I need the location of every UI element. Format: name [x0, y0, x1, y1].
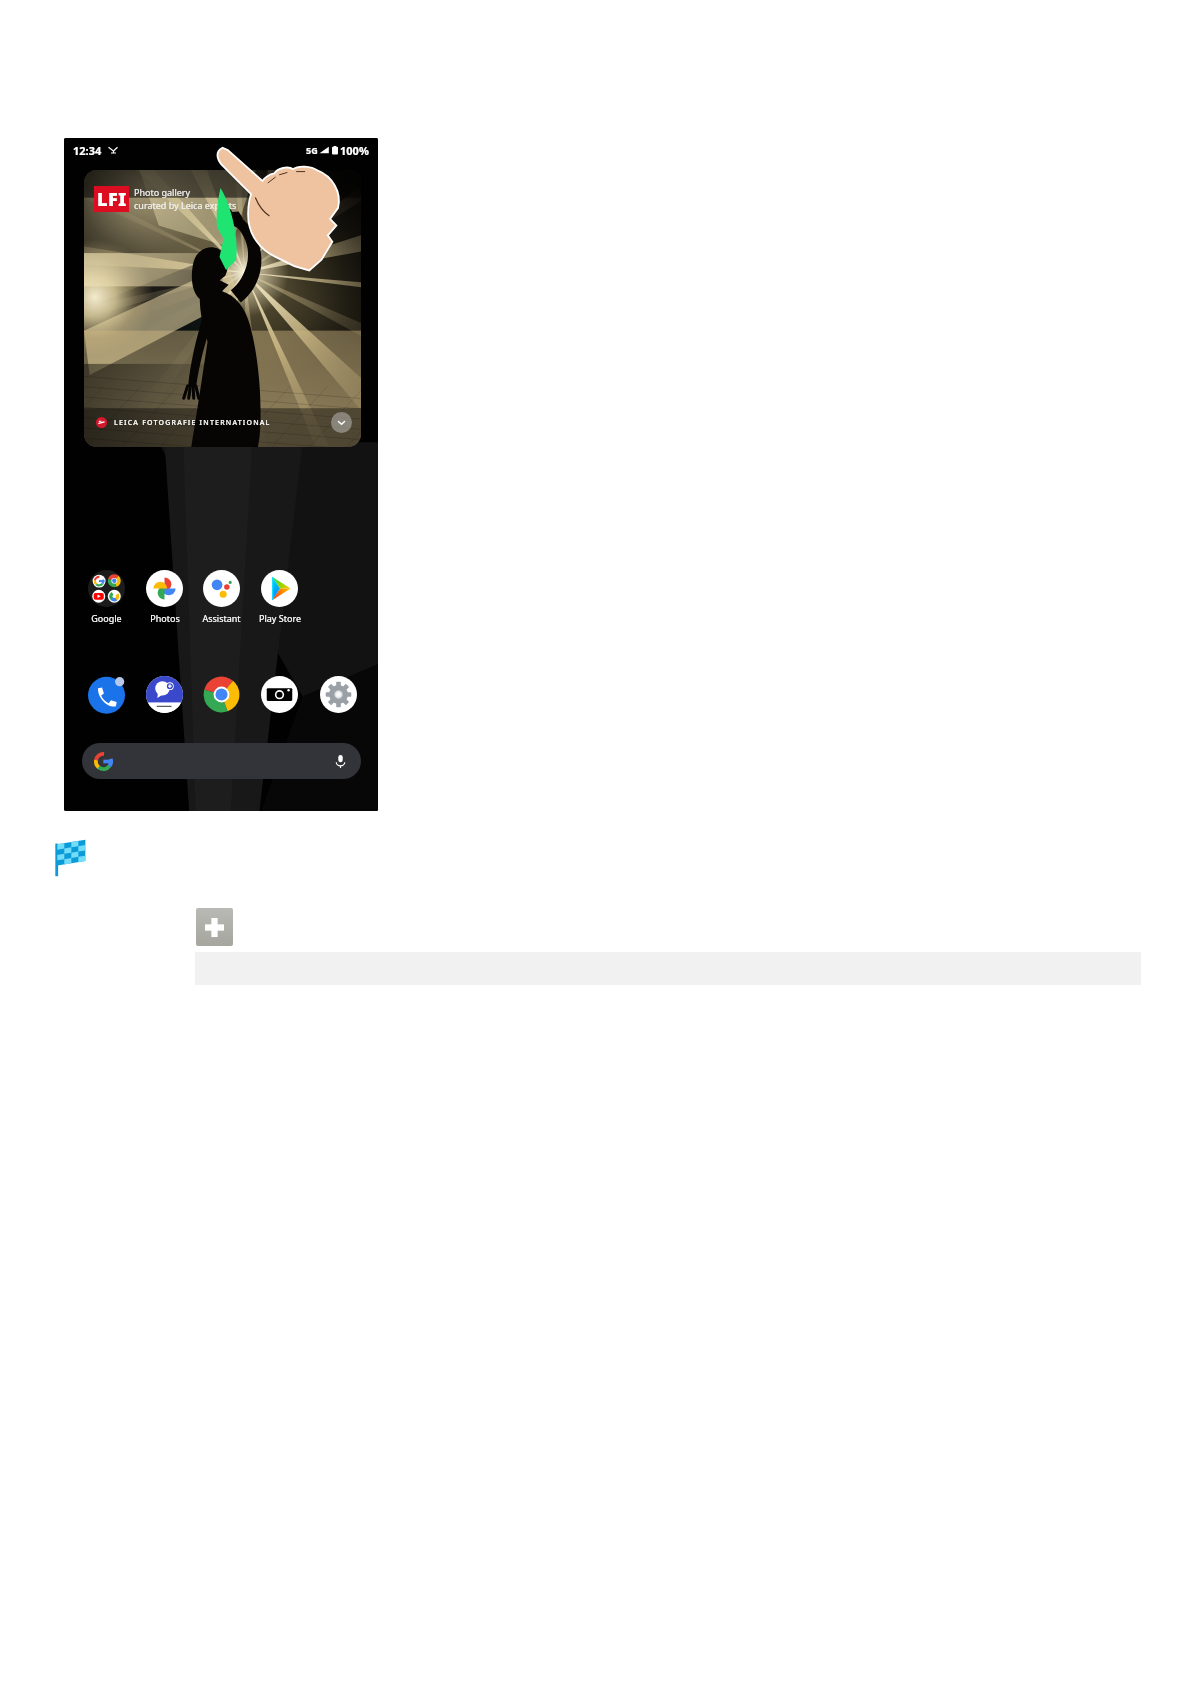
staticText: LFI — [97, 187, 127, 212]
button[interactable]: Photos — [136, 570, 193, 624]
button[interactable]: Assistant — [193, 570, 250, 624]
staticText: 100% — [340, 143, 369, 158]
button[interactable]: Add — [196, 908, 233, 946]
staticText: LEICA FOTOGRAFIE INTERNATIONAL — [114, 418, 271, 428]
button[interactable]: Google — [78, 570, 135, 624]
button[interactable]: Phone — [88, 676, 125, 713]
button[interactable]: Expand notification — [331, 412, 352, 433]
staticText: 12:34 — [73, 143, 102, 158]
button[interactable]: Camera — [261, 676, 298, 713]
button[interactable]: Settings — [320, 676, 357, 713]
staticText: curated by Leica experts — [134, 199, 237, 211]
staticText: Photo gallery — [134, 186, 191, 198]
staticText: 5G — [306, 144, 318, 156]
staticText: Play Store — [259, 612, 301, 624]
staticText: Assistant — [202, 612, 241, 624]
button[interactable]: Play Store — [251, 570, 308, 624]
button[interactable]: Voice search — [332, 753, 349, 770]
button[interactable]: Chrome — [203, 676, 240, 713]
button[interactable]: LFI — [84, 170, 361, 447]
button[interactable]: Messages — [146, 676, 183, 713]
button[interactable]: Search with Google — [82, 743, 361, 779]
staticText: Photos — [150, 612, 180, 624]
staticText: Google — [91, 612, 122, 624]
